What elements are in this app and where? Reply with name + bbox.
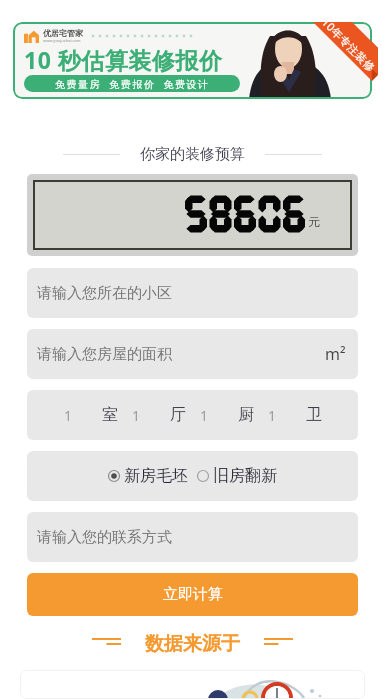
button[interactable]: 请输入您房屋的面积	[27, 329, 358, 379]
staticText: 10年专注装修	[319, 14, 379, 74]
staticText: 立即计算	[163, 585, 223, 604]
staticText: 厅	[170, 405, 186, 425]
staticText: m²	[325, 343, 346, 365]
other: 10年专注装修	[314, 19, 384, 69]
button[interactable]: 请输入您所在的小区	[27, 268, 358, 318]
button[interactable]: 优居宅管家	[13, 22, 372, 99]
staticText: 10 秒估算装修报价	[24, 44, 223, 75]
staticText: 1	[64, 406, 73, 425]
staticText: 免费量房 免费报价 免费设计	[55, 77, 210, 91]
button[interactable]: 新房毛坯	[108, 466, 188, 486]
staticText: 你家的装修预算	[140, 145, 245, 164]
staticText: 请输入您所在的小区	[37, 284, 172, 303]
staticText: 请输入您房屋的面积	[37, 345, 172, 364]
staticText: www.youjuzhai.com	[43, 38, 81, 43]
staticText: 1	[132, 406, 141, 425]
button[interactable]: 1	[27, 390, 358, 440]
staticText: 请输入您的联系方式	[37, 528, 172, 547]
button[interactable]: 立即计算	[27, 573, 358, 616]
staticText: 厨	[238, 405, 254, 425]
staticText: 室	[102, 405, 118, 425]
staticText: 新房毛坯	[124, 466, 188, 486]
staticText: 元	[308, 214, 320, 229]
staticText: 1	[200, 406, 209, 425]
staticText: 数据来源于	[145, 632, 240, 656]
button[interactable]: 旧房翻新	[197, 466, 277, 486]
staticText: 优居宅管家	[43, 28, 83, 38]
button[interactable]: 新房毛坯	[27, 451, 358, 501]
button[interactable]: 请输入您的联系方式	[27, 512, 358, 562]
staticText: 1	[268, 406, 277, 425]
staticText: 卫	[306, 405, 322, 425]
staticText: 旧房翻新	[213, 466, 277, 486]
